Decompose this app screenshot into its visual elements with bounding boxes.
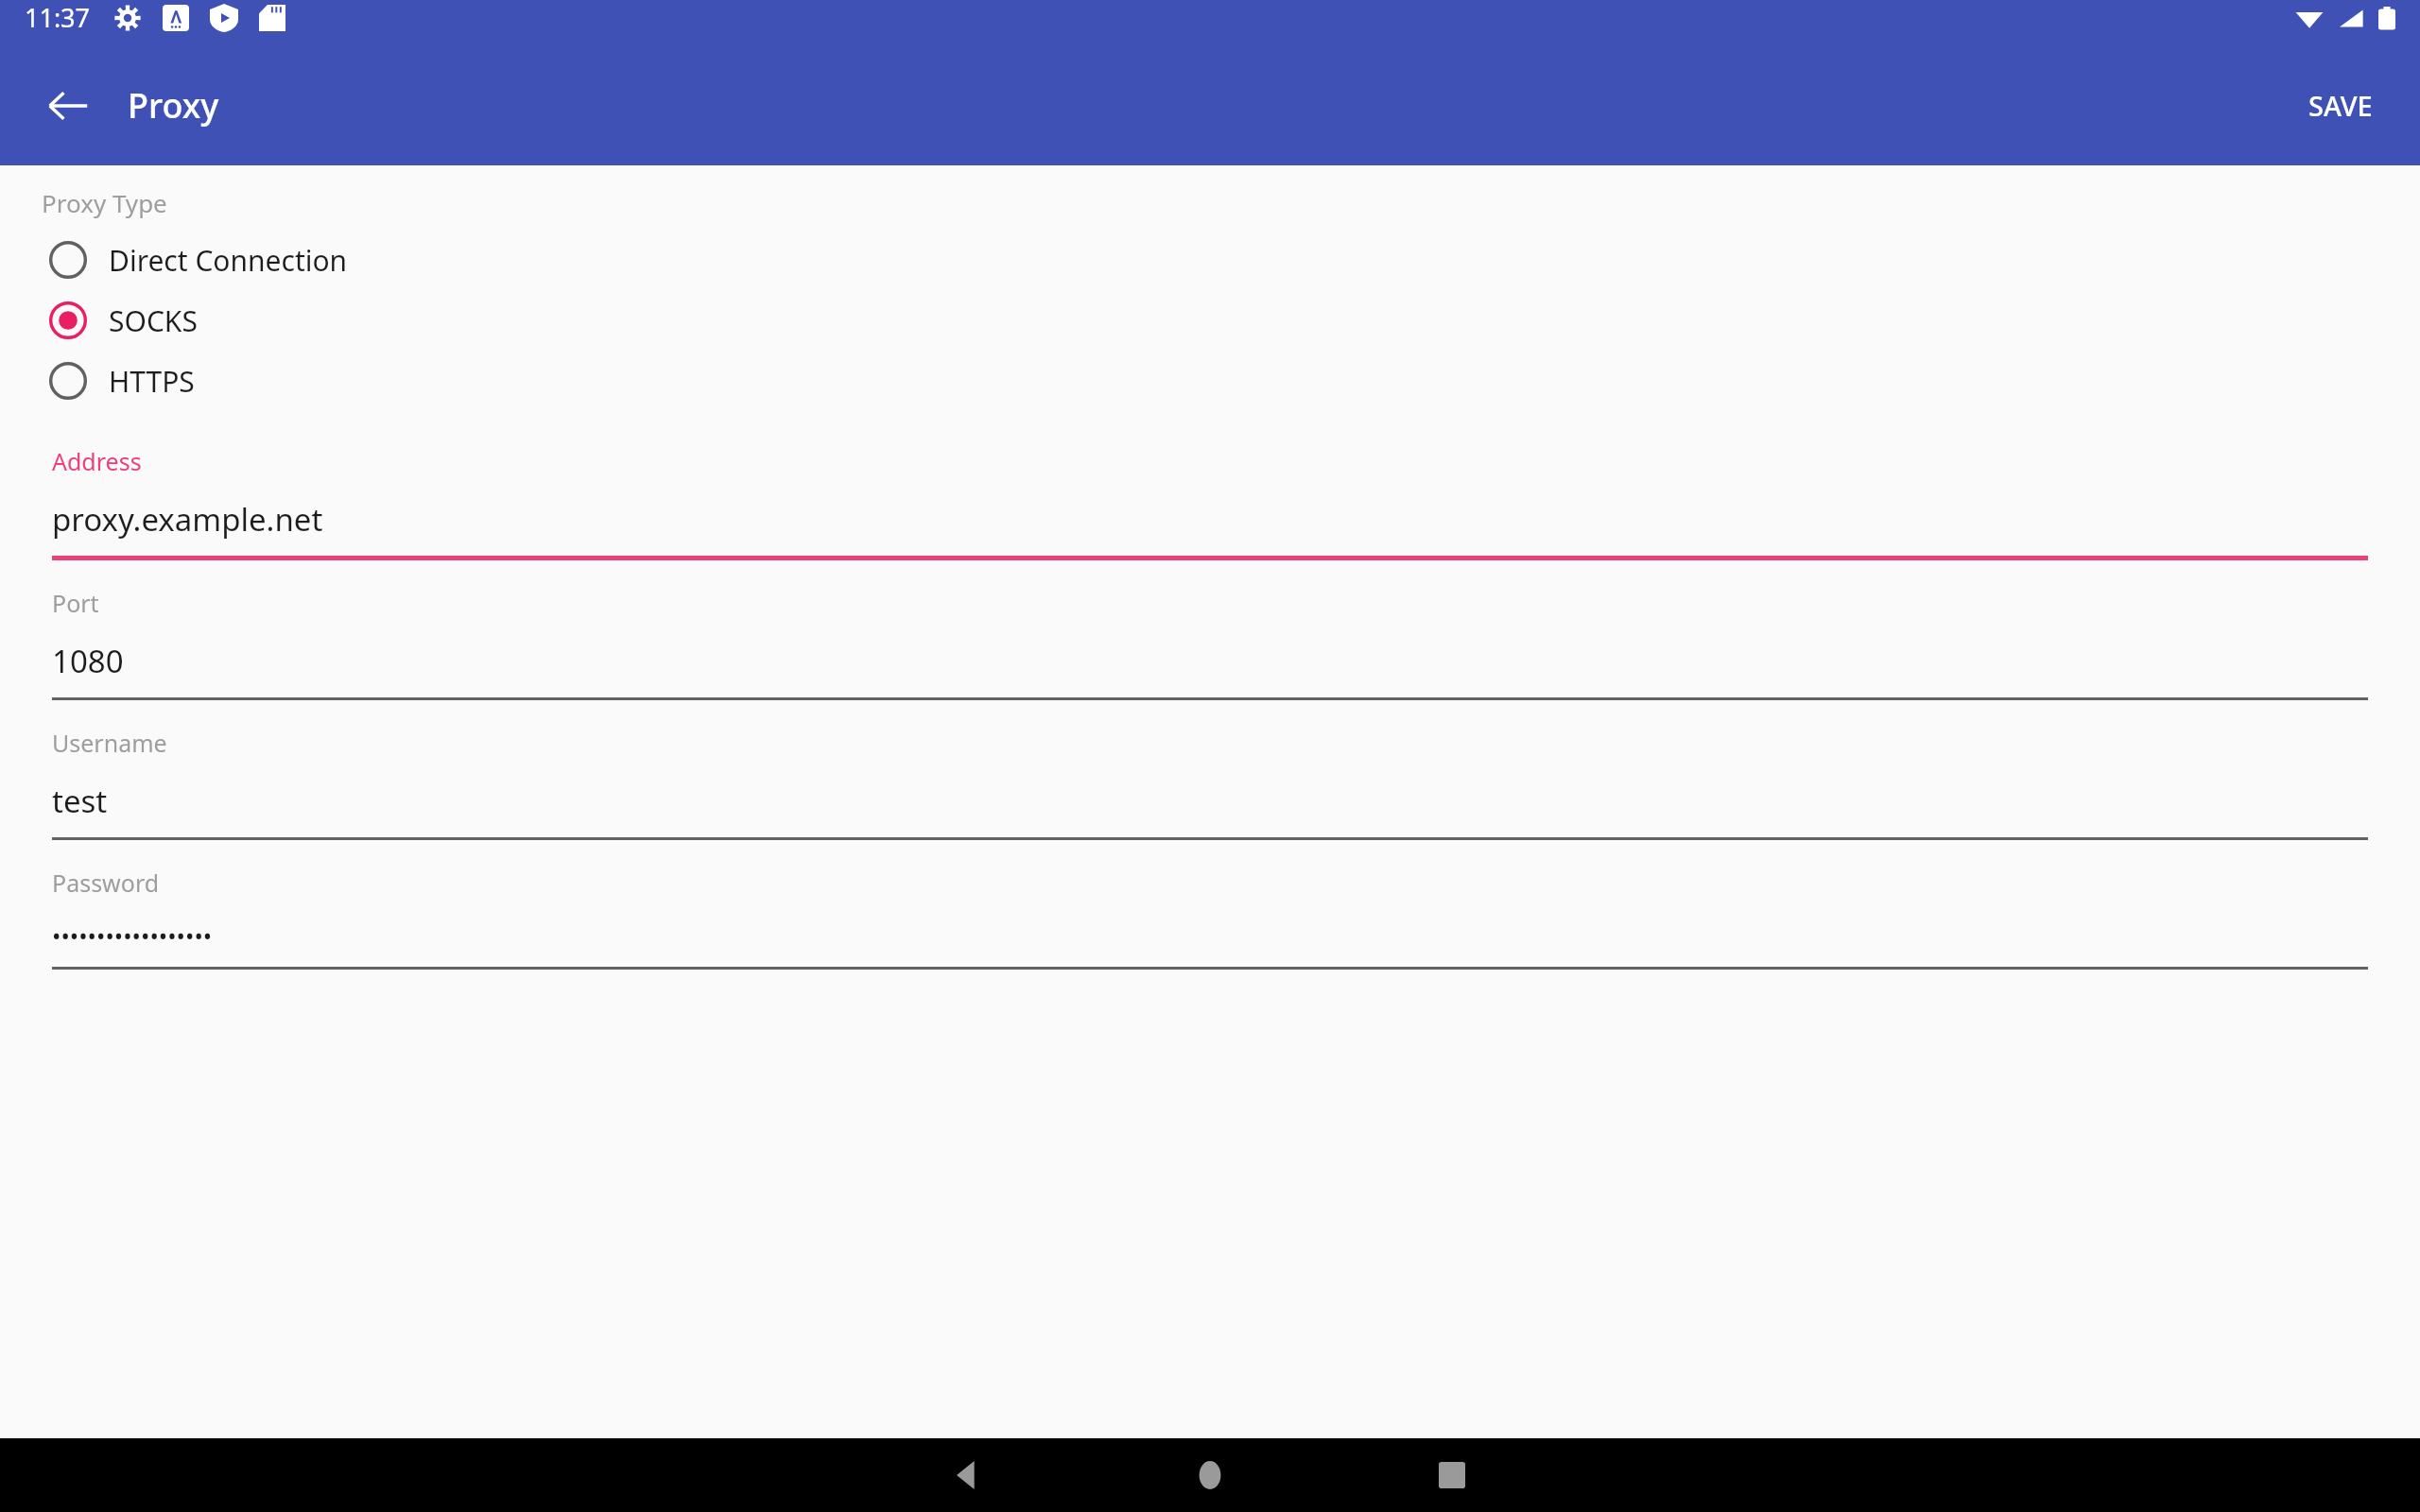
staticText: Password — [52, 867, 160, 899]
staticText: Username — [52, 727, 167, 759]
staticText: Address — [52, 445, 142, 477]
staticText: SOCKS — [109, 301, 198, 340]
button[interactable]: Home — [1125, 1438, 1295, 1512]
staticText: Proxy — [128, 82, 219, 129]
button[interactable]: Back — [883, 1438, 1053, 1512]
button[interactable]: SAVE — [2280, 68, 2401, 143]
button[interactable]: Address — [0, 419, 2420, 560]
button[interactable]: HTTPS — [0, 351, 2420, 411]
button[interactable]: Port — [0, 560, 2420, 700]
button[interactable]: Recent apps — [1367, 1438, 1537, 1512]
staticText: Port — [52, 587, 99, 619]
button[interactable]: Password — [0, 840, 2420, 970]
staticText: Direct Connection — [109, 241, 348, 280]
button[interactable]: Username — [0, 700, 2420, 840]
staticText: proxy.example.net — [52, 498, 323, 541]
staticText: test — [52, 780, 108, 822]
staticText: SAVE — [2308, 87, 2373, 124]
staticText: Proxy Type — [42, 186, 167, 219]
button[interactable]: SOCKS — [0, 290, 2420, 351]
staticText: 11:37 — [25, 0, 91, 35]
staticText: •••••••••••••••••• — [52, 919, 213, 952]
staticText: HTTPS — [109, 362, 195, 401]
button[interactable]: Back — [25, 62, 112, 149]
staticText: 1080 — [52, 640, 124, 682]
button[interactable]: Direct Connection — [0, 230, 2420, 290]
